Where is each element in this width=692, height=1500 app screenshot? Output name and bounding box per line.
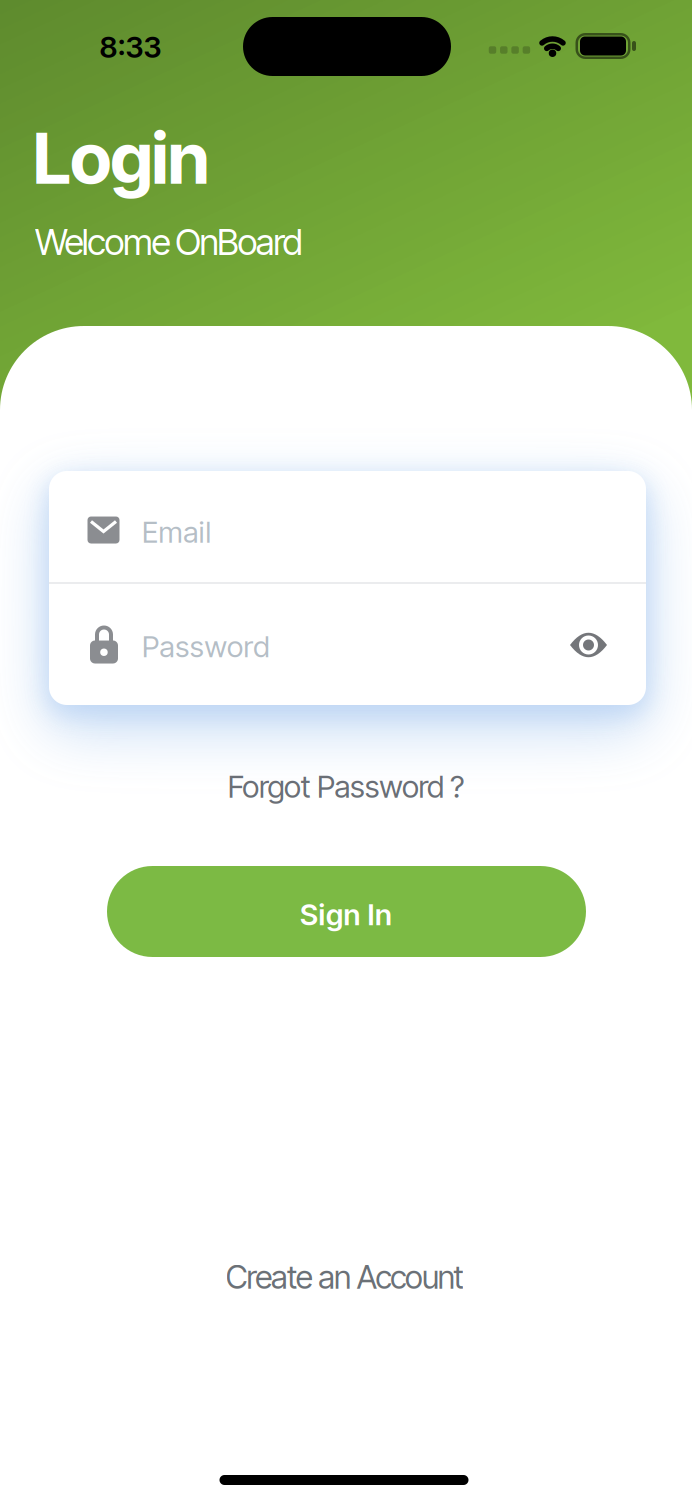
staticText: 8:33: [99, 30, 161, 64]
staticText: Create an Account: [226, 1258, 463, 1296]
staticText: Email: [142, 515, 211, 549]
staticText: Forgot Password ?: [228, 768, 464, 805]
staticText: Sign In: [300, 897, 392, 932]
staticText: Password: [142, 629, 269, 664]
staticText: Welcome OnBoard: [35, 221, 303, 263]
staticText: Login: [33, 116, 210, 200]
